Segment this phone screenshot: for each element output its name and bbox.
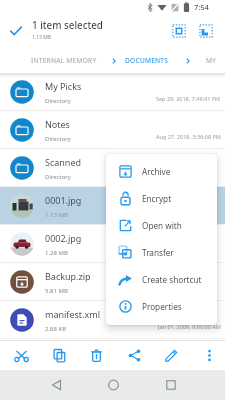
staticText: Backup.zip xyxy=(45,270,91,282)
staticText: 7:54 xyxy=(194,2,209,12)
button[interactable]: Scanned xyxy=(0,149,225,187)
button[interactable]: Notes xyxy=(0,111,225,149)
staticText: 1.13 MB xyxy=(32,34,52,41)
staticText: Open with xyxy=(142,220,182,231)
button[interactable] xyxy=(194,19,218,43)
staticText: manifest.xml xyxy=(45,308,100,320)
button[interactable]: DOCUMENTS xyxy=(125,56,169,65)
staticText: 0002.jpg xyxy=(45,232,82,244)
button[interactable]: Archive xyxy=(106,158,217,185)
button[interactable] xyxy=(47,343,72,368)
staticText: 1.28 MB xyxy=(45,249,68,257)
button[interactable]: Backup.zip xyxy=(0,263,225,301)
button[interactable]: Properties xyxy=(106,293,217,320)
staticText: MY PICTU xyxy=(206,56,225,65)
button[interactable]: 0001.jpg xyxy=(0,187,225,225)
staticText: Encrypt xyxy=(142,193,172,204)
staticText: My Picks xyxy=(45,80,82,92)
button[interactable]: Transfer xyxy=(106,239,217,266)
staticText: Archive xyxy=(142,166,171,177)
staticText: Aug 27, 2018, 3:36:08 PM xyxy=(156,133,221,140)
staticText: 1.13 MB xyxy=(45,211,68,219)
staticText: Sep 29, 2018, 7:49:41 PM xyxy=(156,95,221,102)
staticText: 2.88 KB xyxy=(45,325,67,333)
button[interactable] xyxy=(84,343,109,368)
staticText: Directory xyxy=(45,97,71,105)
staticText: 0001.jpg xyxy=(45,194,82,206)
button[interactable] xyxy=(197,343,222,368)
staticText: 1 item selected xyxy=(32,19,103,32)
button[interactable] xyxy=(167,19,191,43)
button[interactable] xyxy=(9,343,34,368)
staticText: Jan 01, 2009, 9:00:00 AM xyxy=(158,323,221,330)
button[interactable]: Open with xyxy=(106,212,217,239)
staticText: Notes xyxy=(45,118,70,130)
button[interactable] xyxy=(75,370,150,400)
button[interactable] xyxy=(150,370,225,400)
staticText: Transfer xyxy=(142,247,174,258)
staticText: Properties xyxy=(142,301,182,312)
staticText: Directory xyxy=(45,173,71,181)
staticText: Create shortcut xyxy=(142,274,202,285)
staticText: INTERNAL MEMORY xyxy=(31,56,97,65)
button[interactable] xyxy=(159,343,184,368)
staticText: Directory xyxy=(45,135,71,143)
button[interactable]: Encrypt xyxy=(106,185,217,212)
button[interactable]: manifest.xml xyxy=(0,301,225,339)
button[interactable] xyxy=(122,343,147,368)
button[interactable] xyxy=(0,370,75,400)
staticText: Scanned xyxy=(45,156,82,168)
staticText: 5.81 MB xyxy=(45,287,68,295)
button[interactable]: My Picks xyxy=(0,73,225,111)
button[interactable]: Create shortcut xyxy=(106,266,217,293)
button[interactable]: 0002.jpg xyxy=(0,225,225,263)
